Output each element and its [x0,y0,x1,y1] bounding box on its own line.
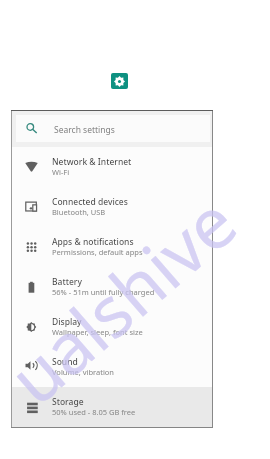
other: Search [27,123,37,133]
button[interactable]: Connected devices [12,187,212,228]
staticText: 50% used - 8.05 GB free [52,407,136,417]
button[interactable]: Sound [12,347,212,388]
staticText: ualshive [0,175,254,424]
button[interactable]: Settings [111,73,128,89]
staticText: Display [52,316,82,328]
staticText: Search settings [54,124,115,136]
button[interactable]: Search [16,115,210,142]
staticText: Wallpaper, sleep, font size [52,327,143,337]
staticText: Connected devices [52,196,128,208]
staticText: Permissions, default apps [52,247,143,257]
staticText: Sound [52,356,78,368]
button[interactable]: Storage [12,387,212,427]
button[interactable]: Network & Internet [12,147,212,188]
staticText: Network & Internet [52,156,132,168]
button[interactable]: Battery [12,267,212,308]
staticText: Wi-Fi [52,167,70,177]
staticText: Battery [52,276,82,288]
staticText: 56% - 51m until fully charged [52,287,155,297]
button[interactable]: Display [12,307,212,348]
staticText: Bluetooth, USB [52,207,106,217]
staticText: Volume, vibration [52,367,114,377]
button[interactable]: Apps & notifications [12,227,212,268]
staticText: Storage [52,396,84,408]
staticText: Apps & notifications [52,236,134,248]
